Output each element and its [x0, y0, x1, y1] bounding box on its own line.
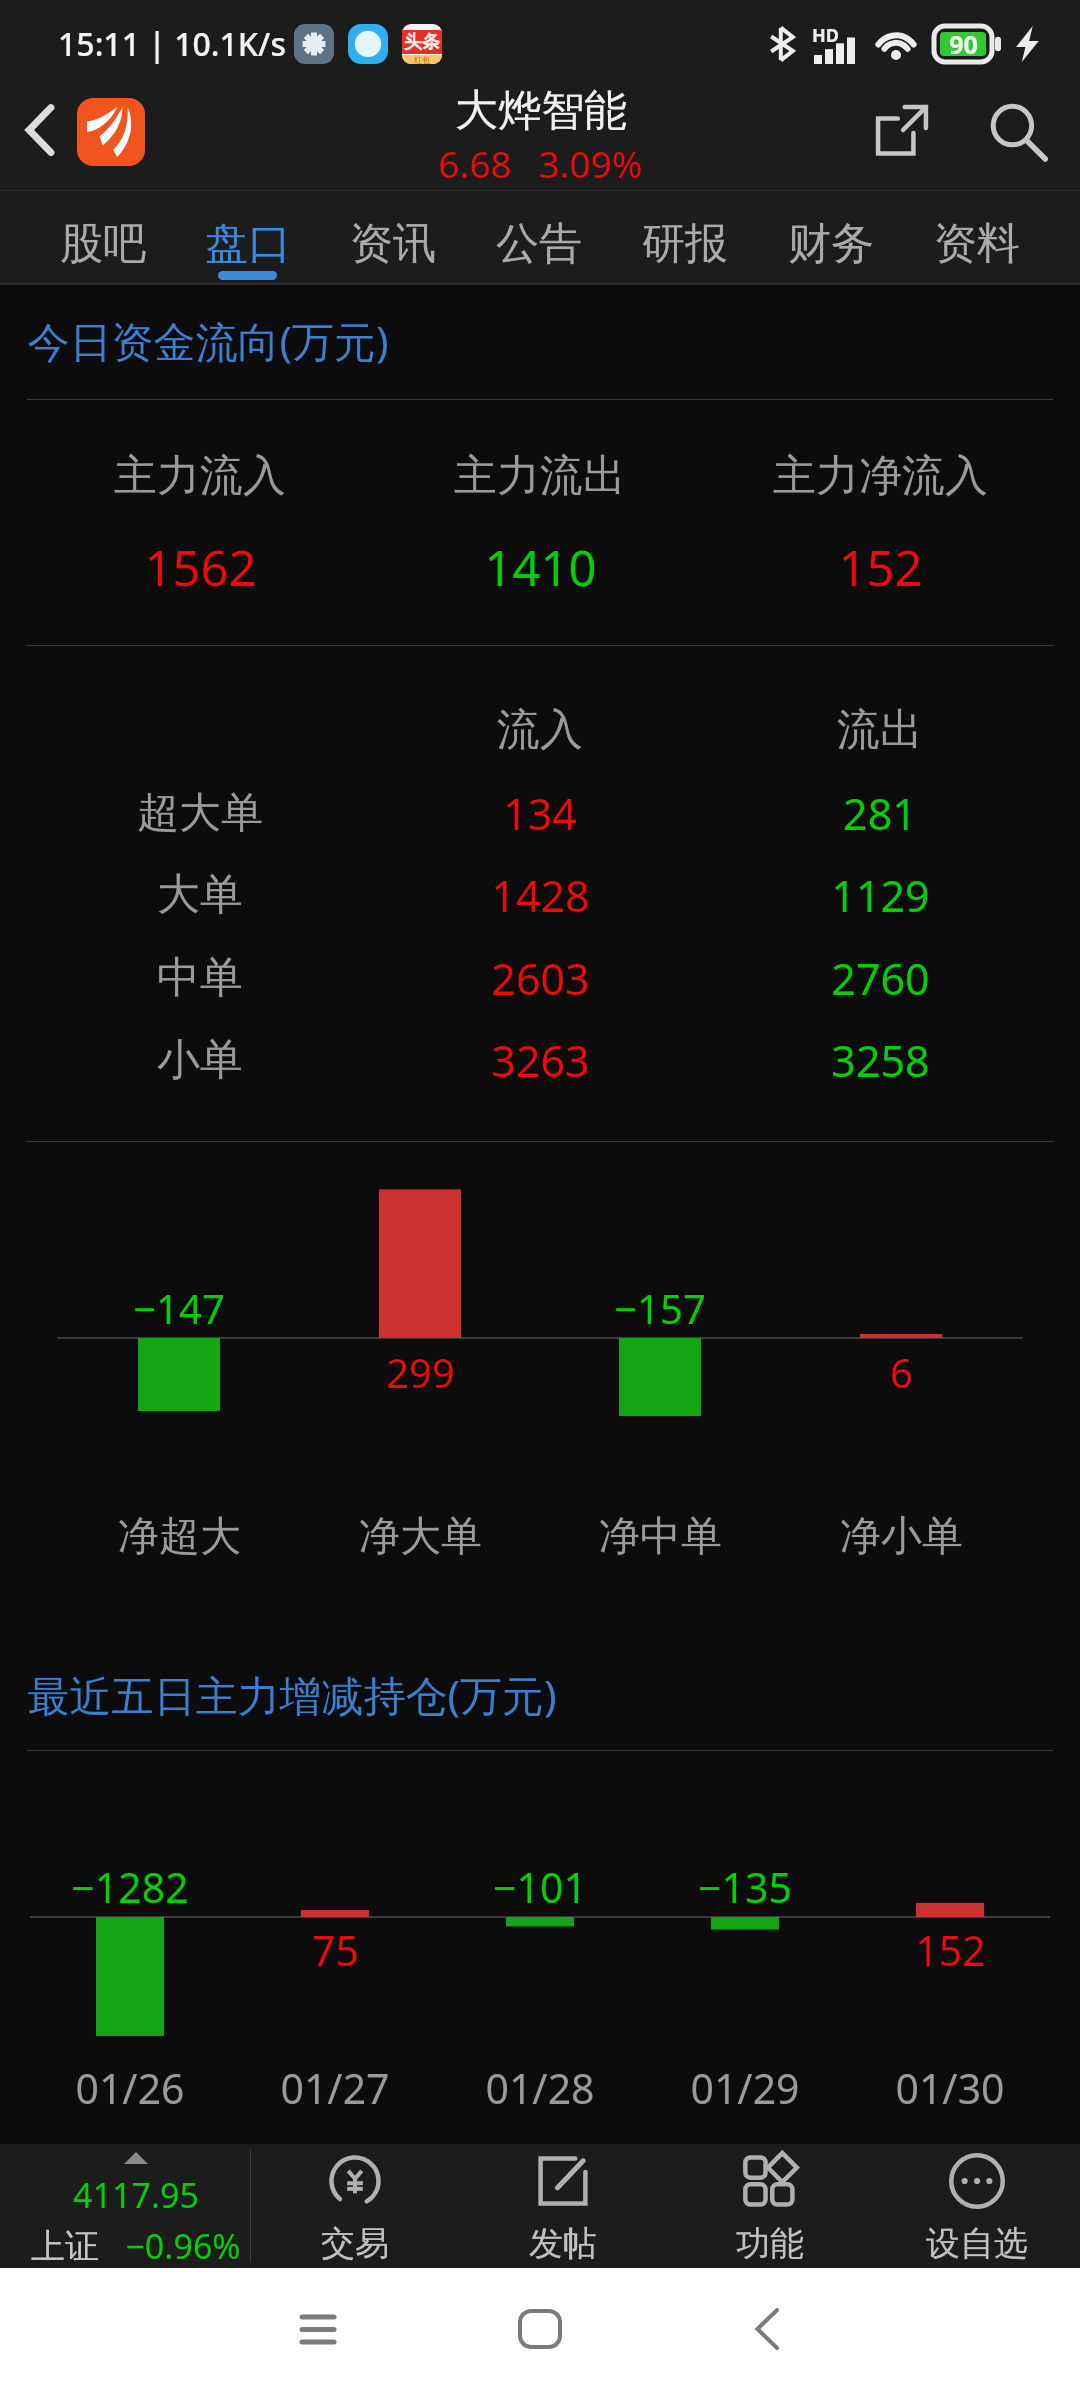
staticText: 主力净流入 — [773, 449, 988, 503]
staticText: 主力流出 — [454, 449, 626, 503]
button[interactable]: 公告 — [466, 191, 612, 285]
staticText: 3258 — [831, 1031, 930, 1090]
staticText: 红包 — [414, 55, 430, 64]
button[interactable]: 研报 — [612, 191, 758, 285]
button[interactable]: 中单 — [0, 938, 1080, 1018]
staticText: 01/30 — [895, 2060, 1005, 2116]
staticText: 功能 — [736, 2222, 804, 2265]
staticText: 90 — [949, 27, 978, 61]
button[interactable]: Toutiao — [402, 24, 442, 64]
staticText: 6.68 — [438, 138, 512, 187]
button[interactable]: 股吧 — [30, 191, 175, 285]
button[interactable]: 财务 — [758, 191, 904, 285]
staticText: 1428 — [491, 866, 590, 925]
staticText: 中单 — [157, 951, 243, 1005]
button[interactable]: 小单 — [0, 1020, 1080, 1100]
staticText: 超大单 — [137, 787, 263, 840]
staticText: 134 — [503, 784, 577, 843]
button[interactable]: Back — [0, 88, 84, 191]
staticText: 152 — [915, 1922, 986, 1978]
staticText: −0.96% — [125, 2223, 241, 2269]
staticText: 主力流入 — [114, 449, 286, 503]
staticText: 6 — [890, 1345, 913, 1399]
staticText: 资讯 — [350, 217, 436, 271]
staticText: 净超大 — [118, 1511, 241, 1563]
button[interactable]: 功能 — [666, 2144, 873, 2268]
staticText: 最近五日主力增减持仓(万元) — [27, 1666, 557, 1723]
staticText: 资料 — [934, 217, 1020, 271]
button[interactable]: 设自选 — [873, 2144, 1080, 2268]
staticText: 发帖 — [529, 2222, 597, 2265]
staticText: 1129 — [831, 866, 930, 925]
staticText: 15:11 | 10.1K/s — [58, 22, 286, 66]
button[interactable]: 发帖 — [459, 2144, 666, 2268]
button[interactable]: Browser — [348, 24, 388, 64]
staticText: 3263 — [491, 1031, 590, 1090]
staticText: 01/29 — [690, 2060, 800, 2116]
button[interactable]: 超大单 — [0, 773, 1080, 853]
button[interactable]: 资讯 — [320, 191, 466, 285]
staticText: −147 — [133, 1281, 225, 1335]
staticText: 2760 — [831, 949, 930, 1008]
button[interactable]: Share — [860, 80, 960, 180]
button[interactable]: Recent apps — [273, 2284, 363, 2374]
staticText: HD — [812, 23, 839, 48]
staticText: −157 — [614, 1281, 706, 1335]
staticText: 流入 — [497, 703, 583, 757]
staticText: 2603 — [491, 949, 590, 1008]
staticText: 小单 — [157, 1033, 243, 1087]
staticText: 流出 — [837, 703, 923, 757]
staticText: 大单 — [157, 868, 243, 922]
button[interactable]: Back — [722, 2284, 812, 2374]
staticText: 财务 — [788, 217, 874, 271]
button[interactable]: 大单 — [0, 855, 1080, 935]
staticText: 设自选 — [926, 2222, 1028, 2265]
staticText: −135 — [698, 1859, 792, 1915]
staticText: 上证 — [31, 2225, 99, 2268]
button[interactable]: Home — [495, 2284, 585, 2374]
button[interactable]: Settings — [294, 24, 334, 64]
staticText: 股吧 — [60, 217, 146, 271]
staticText: 281 — [843, 784, 917, 843]
staticText: 盘口 — [205, 217, 291, 271]
staticText: 净大单 — [359, 1511, 482, 1563]
staticText: 净中单 — [599, 1511, 722, 1563]
staticText: 今日资金流向(万元) — [27, 312, 389, 369]
staticText: −1282 — [71, 1859, 189, 1915]
button[interactable]: 交易 — [251, 2144, 459, 2268]
button[interactable]: 资料 — [904, 191, 1050, 285]
staticText: 交易 — [321, 2222, 389, 2265]
staticText: −101 — [493, 1859, 587, 1915]
staticText: 净小单 — [840, 1511, 963, 1563]
staticText: 01/27 — [280, 2060, 390, 2116]
staticText: 01/28 — [485, 2060, 595, 2116]
staticText: 4117.95 — [73, 2172, 199, 2218]
button[interactable]: App home — [77, 98, 145, 166]
staticText: 研报 — [642, 217, 728, 271]
staticText: 299 — [386, 1345, 455, 1399]
staticText: 01/26 — [75, 2060, 185, 2116]
staticText: 头条 — [404, 31, 440, 54]
staticText: 1410 — [484, 534, 597, 601]
staticText: 大烨智能 — [455, 84, 627, 138]
button[interactable]: 4117.95 — [0, 2144, 250, 2268]
staticText: 152 — [838, 534, 923, 601]
staticText: 公告 — [496, 217, 582, 271]
staticText: 75 — [312, 1922, 359, 1978]
staticText: 3.09% — [538, 138, 643, 187]
button[interactable]: Search — [960, 80, 1060, 180]
staticText: 1562 — [144, 534, 257, 601]
button[interactable]: 盘口 — [175, 191, 320, 285]
